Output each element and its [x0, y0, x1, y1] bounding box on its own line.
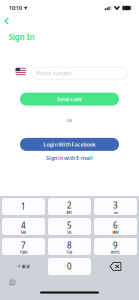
button[interactable]: Back — [0, 14, 14, 28]
button[interactable]: 0 — [48, 258, 91, 275]
button[interactable]: 5 — [48, 218, 91, 235]
staticText: 0 — [67, 261, 72, 272]
button[interactable]: Login With Facebook — [20, 138, 119, 151]
staticText: 10:10 — [9, 4, 22, 12]
button[interactable]: 2 — [48, 198, 91, 215]
button[interactable]: 1 — [2, 198, 45, 215]
button[interactable]: Next keyboard — [6, 277, 19, 288]
button[interactable]: 9 — [94, 238, 137, 255]
button[interactable]: Select country — [15, 68, 26, 75]
staticText: + ✻ # — [17, 263, 29, 270]
staticText: Sign in with E-mail — [46, 154, 93, 162]
staticText: OR — [66, 118, 72, 123]
staticText: 4 — [21, 220, 26, 231]
button[interactable]: Phone number — [31, 67, 127, 79]
staticText: 5 — [67, 220, 72, 231]
button[interactable]: Plus, asterisk, pound — [2, 258, 45, 275]
button[interactable]: 6 — [94, 218, 137, 235]
button[interactable]: 8 — [48, 238, 91, 255]
staticText: 6 — [113, 220, 118, 231]
staticText: PQRS — [20, 251, 27, 254]
staticText: 7 — [21, 240, 26, 251]
staticText: 9 — [113, 240, 118, 251]
staticText: ABC — [66, 211, 72, 214]
staticText: DEF — [113, 211, 117, 214]
staticText: 3 — [113, 200, 118, 211]
staticText: TUV — [66, 251, 72, 254]
staticText: JKL — [67, 231, 71, 234]
staticText: Phone number — [36, 70, 71, 77]
staticText: WXYZ — [111, 251, 120, 254]
staticText: 1 — [21, 201, 26, 212]
staticText: Send code — [57, 96, 82, 103]
staticText: Sign In — [8, 31, 34, 42]
staticText: 8 — [67, 240, 72, 251]
staticText: MNO — [112, 231, 118, 234]
button[interactable]: 3 — [94, 198, 137, 215]
staticText: GHI — [21, 231, 26, 234]
staticText: Login With Facebook — [43, 141, 95, 148]
button[interactable]: Sign in with E-mail — [0, 154, 139, 162]
button[interactable]: Send code — [20, 93, 119, 106]
button[interactable]: 7 — [2, 238, 45, 255]
button[interactable]: Delete — [94, 258, 137, 275]
staticText: 2 — [67, 200, 72, 211]
button[interactable]: 4 — [2, 218, 45, 235]
